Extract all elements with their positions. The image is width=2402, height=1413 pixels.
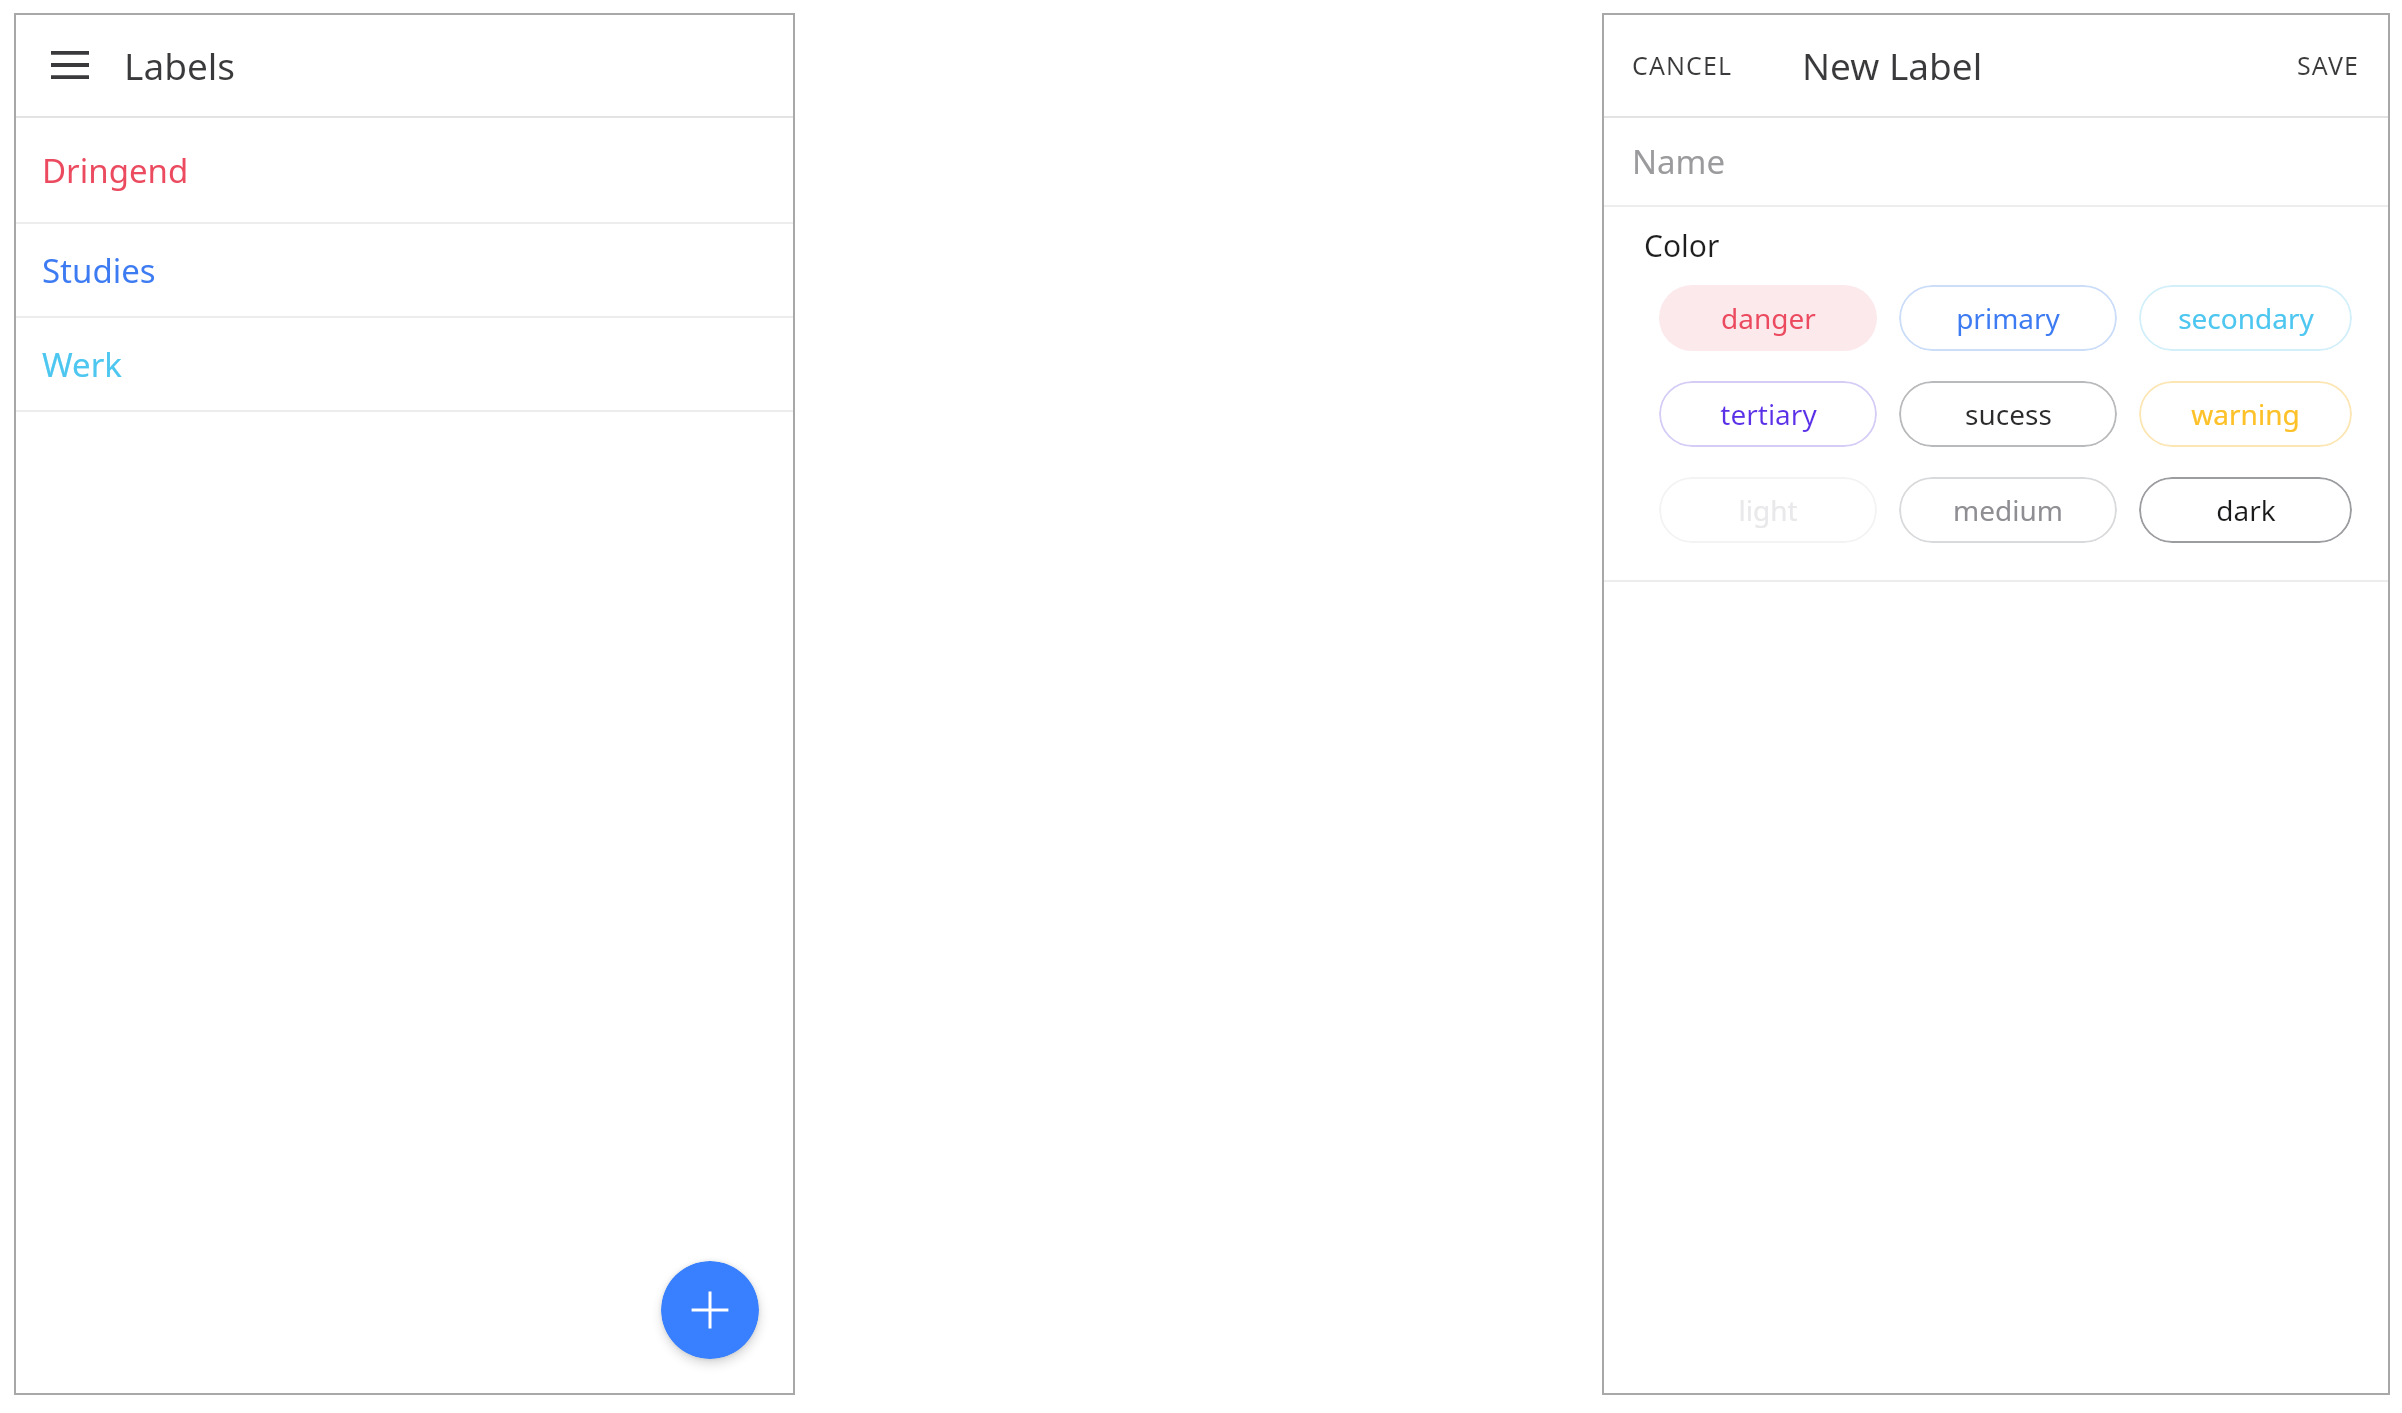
button[interactable]: warning — [2139, 381, 2352, 447]
button[interactable]: light — [1659, 477, 1877, 543]
staticText: CANCEL — [1632, 48, 1733, 82]
staticText: warning — [2191, 395, 2300, 433]
staticText: sucess — [1965, 395, 2052, 433]
staticText: SAVE — [2297, 48, 2360, 82]
button[interactable]: tertiary — [1659, 381, 1877, 447]
staticText: secondary — [2178, 299, 2314, 337]
button[interactable]: Add label — [661, 1261, 759, 1359]
button[interactable]: SAVE — [2281, 34, 2376, 96]
button[interactable]: danger — [1659, 285, 1877, 351]
staticText: Labels — [124, 40, 236, 90]
staticText: Dringend — [42, 148, 189, 193]
staticText: dark — [2216, 491, 2276, 529]
staticText: medium — [1953, 491, 2063, 529]
staticText: Studies — [42, 248, 156, 293]
staticText: Color — [1644, 225, 1720, 266]
staticText: Name — [1632, 139, 1726, 184]
button[interactable]: secondary — [2139, 285, 2352, 351]
staticText: primary — [1956, 299, 2060, 337]
staticText: danger — [1721, 299, 1816, 337]
button[interactable]: dark — [2139, 477, 2352, 543]
staticText: Werk — [42, 342, 122, 387]
button[interactable]: CANCEL — [1616, 34, 1749, 96]
button[interactable]: Dringend — [14, 118, 795, 222]
button[interactable]: sucess — [1899, 381, 2117, 447]
button[interactable]: Werk — [14, 318, 795, 410]
button[interactable]: Open navigation menu — [40, 35, 100, 95]
staticText: tertiary — [1720, 395, 1817, 433]
staticText: New Label — [1802, 40, 1983, 90]
button[interactable]: primary — [1899, 285, 2117, 351]
button[interactable]: Name — [1602, 118, 2390, 205]
button[interactable]: Studies — [14, 224, 795, 316]
staticText: light — [1738, 491, 1798, 529]
button[interactable]: medium — [1899, 477, 2117, 543]
